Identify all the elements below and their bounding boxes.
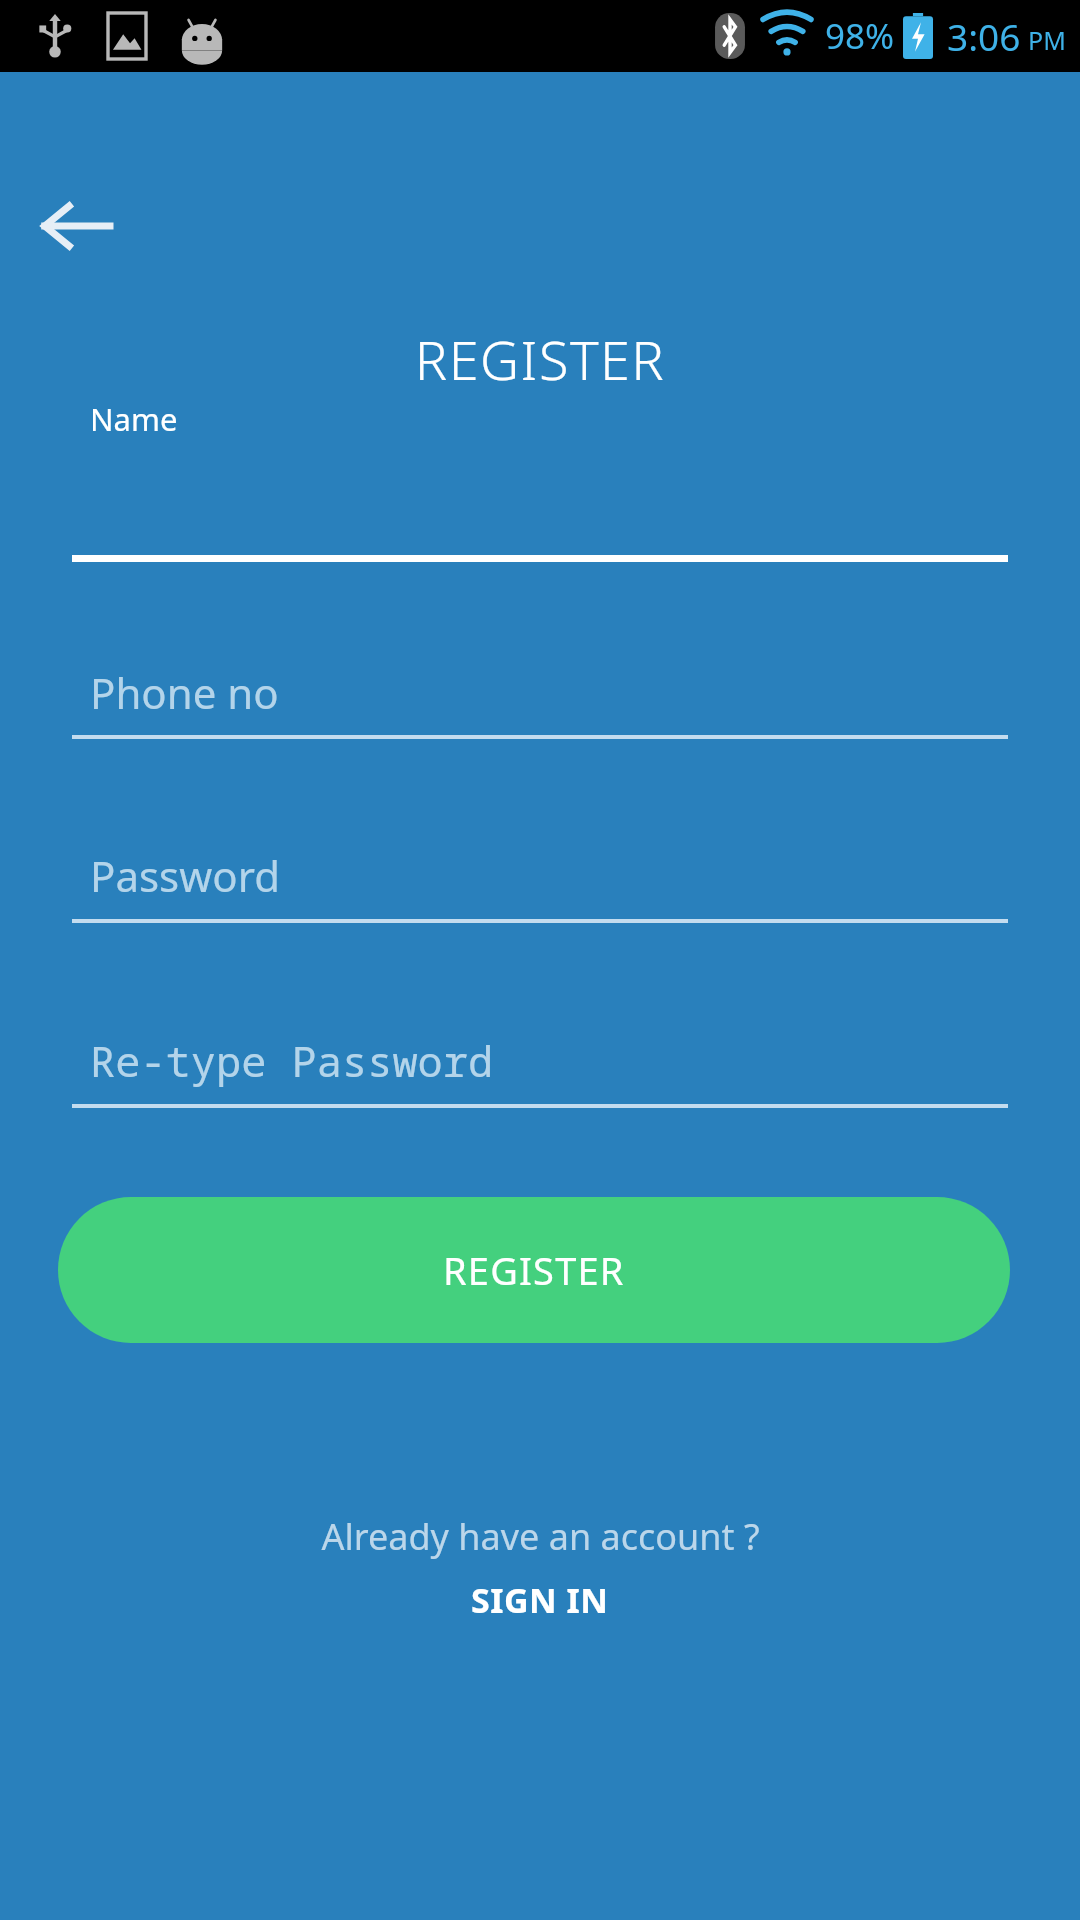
staticText: PM	[1028, 23, 1066, 57]
button[interactable]: Phone no input	[72, 628, 1008, 746]
button[interactable]: SIGN IN	[455, 1573, 625, 1627]
staticText: SIGN IN	[471, 1577, 609, 1623]
button[interactable]: Back	[20, 170, 132, 282]
button[interactable]: Re-type Password input	[72, 996, 1008, 1114]
staticText: Already have an account ?	[321, 1512, 760, 1561]
button[interactable]: REGISTER	[58, 1197, 1010, 1343]
staticText: Re-type Password	[90, 1032, 494, 1089]
staticText: Phone no	[90, 664, 279, 721]
staticText: REGISTER	[443, 1244, 625, 1296]
button[interactable]: Name input	[72, 412, 1008, 567]
staticText: 98%	[825, 12, 895, 60]
staticText: REGISTER	[0, 322, 1080, 396]
staticText: 3:06	[947, 11, 1021, 61]
staticText: Name	[90, 398, 178, 440]
button[interactable]: Password input	[72, 811, 1008, 929]
staticText: Password	[90, 847, 280, 904]
